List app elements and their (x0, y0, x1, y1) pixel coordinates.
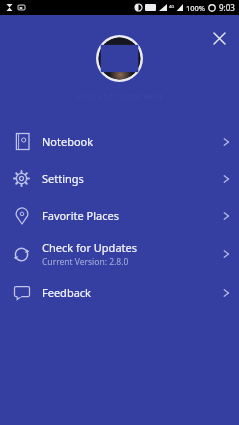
staticText: Settings (42, 171, 84, 186)
button[interactable]: Settings (0, 160, 239, 197)
button[interactable]: Feedback (0, 274, 239, 311)
staticText: 100% (186, 3, 206, 13)
button[interactable]: Close (205, 24, 233, 52)
staticText: Notebook (42, 134, 94, 149)
button[interactable]: Favorite Places (0, 197, 239, 234)
staticText: 9:03 (219, 2, 235, 13)
button[interactable]: Notebook (0, 123, 239, 160)
staticText: Favorite Places (42, 208, 119, 223)
staticText: Check for Updates (42, 240, 137, 255)
staticText: Current Version: 2.8.0 (42, 256, 129, 268)
staticText: Feedback (42, 285, 91, 300)
button[interactable]: Check for Updates (0, 234, 239, 274)
staticText: 4G (169, 4, 175, 9)
